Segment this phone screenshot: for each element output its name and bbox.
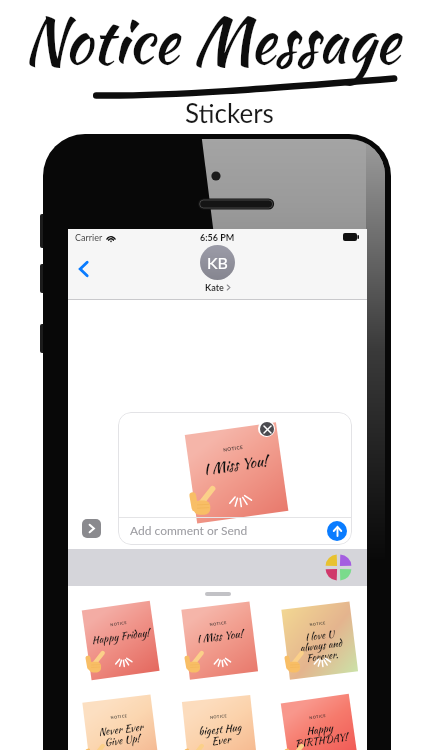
staticText: Add comment or Send xyxy=(130,523,248,537)
staticText: Never Ever Give Up! xyxy=(97,719,145,750)
button[interactable]: NOTICE xyxy=(267,689,367,750)
button[interactable]: NOTICE xyxy=(267,596,367,689)
staticText: Kate xyxy=(205,282,224,293)
button[interactable]: NOTICE xyxy=(68,689,167,750)
staticText: NOTICE xyxy=(210,713,228,720)
staticText: NOTICE xyxy=(110,713,128,720)
button[interactable]: Send xyxy=(327,521,347,541)
button[interactable]: NOTICE xyxy=(167,689,267,750)
staticText: Happy BIRTHDAY! xyxy=(292,718,348,750)
button[interactable]: NOTICE xyxy=(167,596,267,689)
button[interactable]: NOTICE xyxy=(118,412,352,545)
staticText: NOTICE xyxy=(110,620,127,627)
staticText: KB xyxy=(207,253,228,272)
button[interactable]: App store xyxy=(327,556,350,579)
staticText: Carrier xyxy=(75,232,103,243)
staticText: NOTICE xyxy=(209,620,228,627)
staticText: I Miss You! xyxy=(195,626,244,647)
staticText: NOTICE xyxy=(223,444,244,453)
staticText: 6:56 PM xyxy=(200,232,235,243)
staticText: I Miss You! xyxy=(202,450,268,479)
button[interactable]: NOTICE xyxy=(68,596,167,689)
button[interactable]: KB xyxy=(200,245,235,293)
staticText: bigest Hug Ever xyxy=(198,720,243,750)
staticText: Stickers xyxy=(185,97,274,128)
staticText: NOTICE xyxy=(309,713,326,720)
button[interactable]: Remove sticker xyxy=(258,420,275,437)
staticText: I love U always and Forever. xyxy=(297,625,344,666)
staticText: Happy Friday! xyxy=(90,625,151,648)
staticText: NOTICE xyxy=(309,620,327,626)
button[interactable]: Back xyxy=(72,257,96,281)
staticText: Notice Message xyxy=(23,0,400,86)
button[interactable]: Expand apps xyxy=(82,519,101,538)
